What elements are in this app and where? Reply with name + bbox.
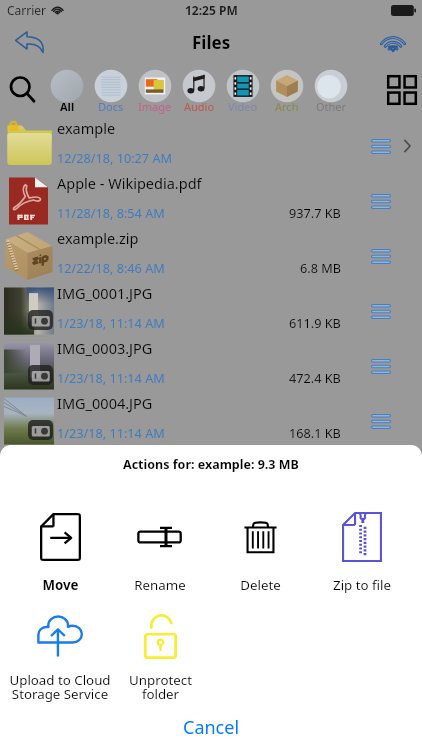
button[interactable]: More options bbox=[366, 186, 396, 216]
button[interactable]: example bbox=[0, 118, 422, 173]
button[interactable]: Docs bbox=[89, 69, 133, 118]
button[interactable]: Search bbox=[6, 73, 40, 107]
staticText: Apple - Wikipedia.pdf bbox=[57, 173, 202, 193]
button[interactable]: Audio bbox=[177, 69, 221, 118]
staticText: Docs bbox=[98, 99, 124, 114]
staticText: 1/23/18, 11:14 AM bbox=[57, 314, 165, 331]
button[interactable]: Apple - Wikipedia.pdf bbox=[0, 173, 422, 228]
staticText: Cancel bbox=[183, 715, 240, 740]
staticText: Files bbox=[192, 31, 231, 54]
staticText: Rename bbox=[134, 576, 186, 594]
button[interactable]: More options bbox=[366, 241, 396, 271]
staticText: Video bbox=[228, 99, 258, 114]
staticText: IMG_0001.JPG bbox=[57, 283, 153, 303]
staticText: 1/23/18, 11:14 AM bbox=[57, 424, 165, 441]
staticText: Upload to Cloud Storage Service bbox=[9, 671, 111, 702]
button[interactable]: Delete bbox=[210, 512, 311, 594]
button[interactable]: IMG_0004.JPG bbox=[0, 393, 422, 448]
button[interactable]: example.zip bbox=[0, 228, 422, 283]
button[interactable]: IMG_0001.JPG bbox=[0, 283, 422, 338]
button[interactable]: Move bbox=[10, 512, 110, 594]
staticText: Actions for: example: 9.3 MB bbox=[123, 456, 299, 473]
button[interactable]: More options bbox=[366, 406, 396, 436]
button[interactable]: More options bbox=[366, 296, 396, 326]
button[interactable]: More options bbox=[366, 351, 396, 381]
staticText: Image bbox=[138, 99, 172, 114]
button[interactable]: Unprotect folder bbox=[110, 611, 210, 702]
button[interactable]: Back bbox=[6, 21, 54, 63]
button[interactable]: Video bbox=[221, 69, 265, 118]
staticText: All bbox=[60, 99, 75, 114]
staticText: IMG_0004.JPG bbox=[57, 393, 153, 413]
button[interactable]: Grid view bbox=[383, 71, 421, 109]
button[interactable]: All bbox=[45, 69, 89, 118]
staticText: Other bbox=[316, 99, 347, 114]
button[interactable]: Upload to Cloud Storage Service bbox=[10, 611, 110, 702]
staticText: 6.8 MB bbox=[300, 259, 341, 276]
staticText: 937.7 KB bbox=[289, 204, 341, 221]
staticText: example bbox=[57, 118, 116, 138]
staticText: Zip to file bbox=[333, 576, 391, 594]
staticText: 12:25 PM bbox=[185, 2, 238, 18]
staticText: Move bbox=[42, 576, 79, 594]
staticText: 12/22/18, 8:46 AM bbox=[57, 259, 165, 276]
button[interactable]: More options bbox=[366, 131, 396, 161]
button[interactable]: Rename bbox=[110, 512, 210, 594]
staticText: 611.9 KB bbox=[289, 314, 341, 331]
button[interactable]: Wi-Fi bbox=[369, 21, 417, 63]
staticText: Unprotect folder bbox=[129, 671, 192, 702]
staticText: Audio bbox=[184, 99, 215, 114]
staticText: 168.1 KB bbox=[289, 424, 341, 441]
staticText: 12/28/18, 10:27 AM bbox=[57, 149, 173, 166]
button[interactable]: IMG_0003.JPG bbox=[0, 338, 422, 393]
staticText: 1/23/18, 11:14 AM bbox=[57, 369, 165, 386]
staticText: 472.4 KB bbox=[289, 369, 341, 386]
staticText: Carrier bbox=[7, 2, 47, 18]
button[interactable]: Zip to file bbox=[311, 512, 412, 594]
button[interactable]: Arch bbox=[265, 69, 309, 118]
button[interactable]: Other bbox=[309, 69, 353, 118]
button[interactable]: Image bbox=[133, 69, 177, 118]
staticText: 11/28/18, 8:54 AM bbox=[57, 204, 165, 221]
staticText: example.zip bbox=[57, 228, 139, 248]
staticText: Arch bbox=[275, 99, 299, 114]
staticText: Delete bbox=[240, 576, 281, 594]
staticText: IMG_0003.JPG bbox=[57, 338, 153, 358]
button[interactable]: Cancel bbox=[0, 704, 422, 750]
